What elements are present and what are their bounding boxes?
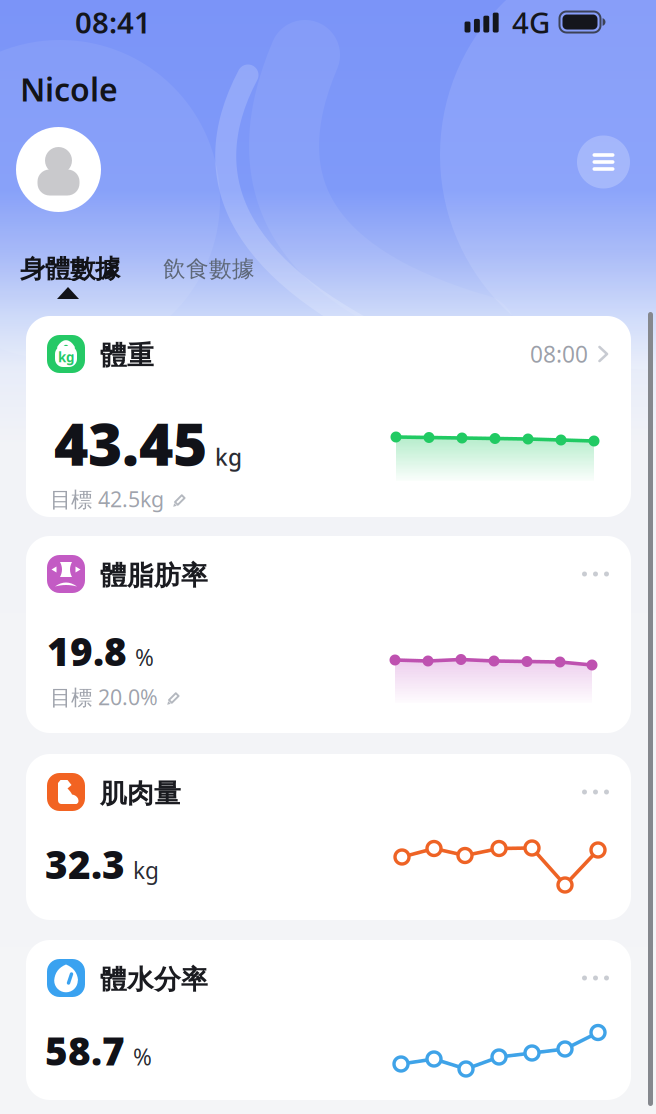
staticText: 肌肉量: [100, 777, 181, 810]
staticText: Nicole: [20, 68, 118, 110]
staticText: %: [135, 642, 154, 672]
button[interactable]: 飲食數據: [163, 255, 255, 283]
staticText: 目標 20.0%: [50, 683, 158, 711]
button[interactable]: Menu: [577, 135, 630, 188]
staticText: 08:00: [530, 339, 588, 369]
staticText: 58.7: [45, 1025, 125, 1076]
staticText: 目標 42.5kg: [50, 485, 164, 513]
staticText: 體水分率: [100, 963, 208, 996]
button[interactable]: 身體數據: [20, 253, 120, 284]
button[interactable]: 體水分率: [26, 940, 631, 1100]
staticText: 19.8: [47, 625, 127, 677]
button[interactable]: 體脂肪率: [26, 536, 631, 733]
staticText: kg: [133, 855, 159, 885]
staticText: kg: [215, 442, 242, 472]
staticText: 4G: [512, 2, 550, 41]
staticText: 體重: [100, 339, 154, 372]
staticText: 32.3: [45, 838, 125, 890]
button[interactable]: Profile: [16, 127, 101, 212]
staticText: 飲食數據: [163, 255, 255, 283]
staticText: 身體數據: [20, 253, 120, 284]
staticText: %: [133, 1042, 152, 1072]
staticText: 43.45: [54, 404, 207, 482]
staticText: 體脂肪率: [100, 559, 208, 592]
button[interactable]: kg: [26, 316, 631, 517]
staticText: kg: [58, 348, 74, 366]
staticText: 08:41: [75, 2, 151, 41]
button[interactable]: 肌肉量: [26, 754, 631, 920]
